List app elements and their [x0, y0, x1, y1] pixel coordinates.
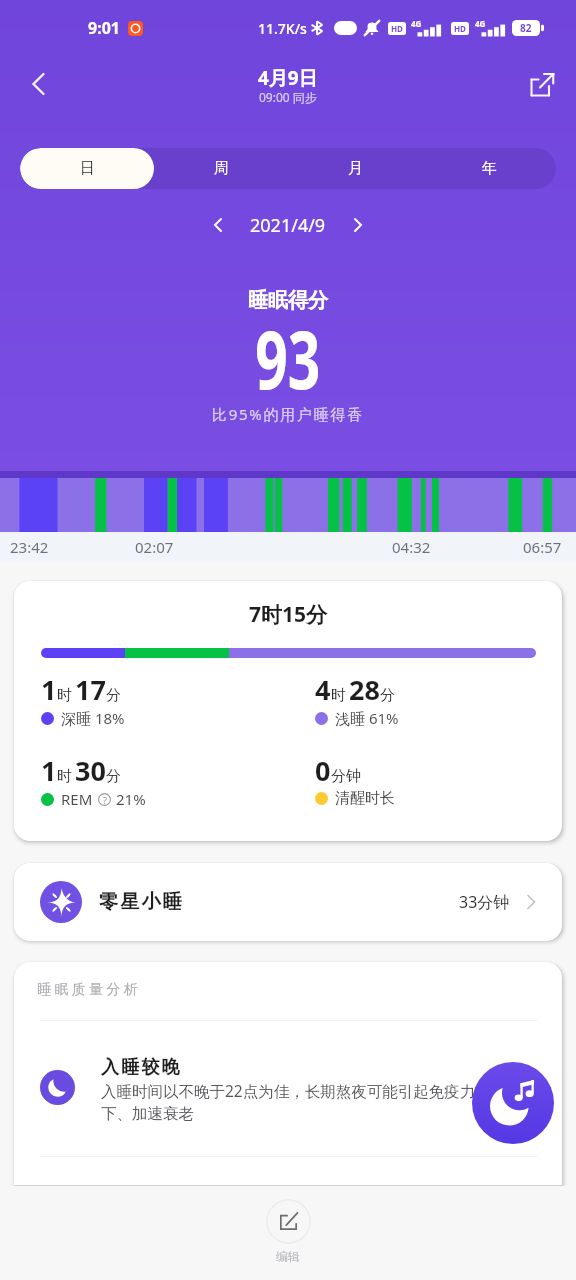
- button[interactable]: 月: [288, 148, 422, 189]
- staticText: 周: [214, 159, 229, 178]
- button[interactable]: 周: [154, 148, 288, 189]
- button[interactable]: 零星小睡: [14, 863, 562, 941]
- staticText: 11.7K/s: [258, 19, 307, 38]
- staticText: HD: [454, 23, 466, 34]
- button[interactable]: Next day: [340, 207, 376, 243]
- staticText: 0: [315, 752, 331, 789]
- button[interactable]: Back: [16, 62, 60, 106]
- staticText: 年: [482, 159, 497, 178]
- staticText: 28: [349, 671, 380, 708]
- staticText: HD: [391, 23, 403, 34]
- staticText: 1: [41, 671, 57, 708]
- staticText: 分: [106, 767, 121, 786]
- staticText: 日: [80, 159, 95, 178]
- staticText: 浅睡 61%: [335, 708, 399, 728]
- staticText: 分: [380, 686, 395, 705]
- staticText: 入睡时间以不晚于22点为佳，长期熬夜可能引起免疫力下、加速衰老: [101, 1080, 499, 1124]
- button[interactable]: Edit: [266, 1199, 311, 1244]
- staticText: 4月9日: [258, 65, 318, 91]
- button[interactable]: 日: [20, 148, 154, 189]
- staticText: 23:42: [10, 537, 49, 557]
- staticText: 入睡较晚: [101, 1056, 182, 1079]
- staticText: 33分钟: [459, 891, 510, 913]
- staticText: 02:07: [135, 537, 174, 557]
- button[interactable]: Sleep music: [472, 1062, 554, 1144]
- staticText: 17: [75, 671, 106, 708]
- staticText: ?: [103, 794, 107, 806]
- staticText: 时: [331, 686, 346, 705]
- button[interactable]: Previous day: [200, 207, 236, 243]
- staticText: 深睡 18%: [61, 708, 125, 728]
- staticText: 比95%的用户睡得香: [212, 404, 364, 424]
- staticText: 时: [57, 686, 72, 705]
- staticText: 93: [255, 303, 321, 412]
- staticText: 睡眠得分: [248, 288, 328, 313]
- staticText: 4G: [411, 18, 422, 29]
- staticText: 编辑: [276, 1249, 300, 1264]
- staticText: 月: [348, 159, 363, 178]
- staticText: 30: [75, 752, 106, 789]
- staticText: 清醒时长: [335, 789, 395, 808]
- staticText: 06:57: [523, 537, 562, 557]
- staticText: 分: [106, 686, 121, 705]
- staticText: 21%: [116, 789, 146, 809]
- staticText: 4: [315, 671, 331, 708]
- staticText: 2021/4/9: [250, 213, 326, 238]
- staticText: 时: [57, 767, 72, 786]
- button[interactable]: 年: [422, 148, 556, 189]
- staticText: 1: [41, 752, 57, 789]
- staticText: 睡眠质量分析: [37, 981, 142, 999]
- button[interactable]: Share: [522, 64, 562, 104]
- staticText: 4G: [475, 18, 486, 29]
- staticText: 零星小睡: [99, 890, 184, 914]
- staticText: 82: [520, 21, 532, 35]
- staticText: 分钟: [331, 767, 361, 786]
- staticText: 9:01: [88, 17, 120, 39]
- staticText: 09:00 同步: [259, 89, 317, 105]
- staticText: 7时15分: [249, 600, 328, 629]
- staticText: 04:32: [392, 537, 431, 557]
- staticText: REM: [61, 789, 93, 809]
